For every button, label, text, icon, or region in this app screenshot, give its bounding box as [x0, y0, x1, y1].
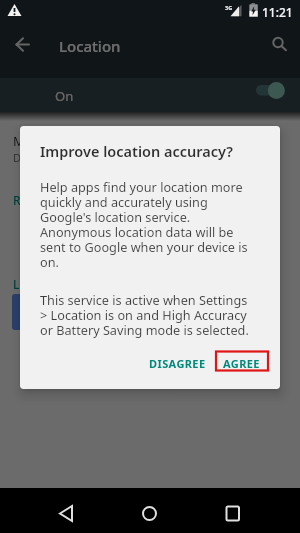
button[interactable] — [141, 505, 158, 522]
button[interactable] — [225, 505, 241, 521]
staticText: AGREE — [223, 356, 260, 371]
staticText: Help apps find your location more quickl… — [40, 178, 248, 271]
staticText: 11:21 — [262, 4, 293, 20]
staticText: This service is active when Settings > L… — [40, 291, 249, 339]
staticText: 3G — [225, 4, 233, 11]
staticText: DISAGREE — [149, 356, 206, 371]
staticText: Device only — [13, 150, 72, 165]
staticText: Improve location accuracy? — [40, 141, 233, 161]
staticText: On — [55, 87, 74, 105]
button[interactable] — [268, 34, 290, 54]
button[interactable]: DISAGREE — [145, 348, 207, 374]
staticText: Location — [59, 36, 121, 56]
button[interactable] — [10, 36, 34, 54]
button[interactable] — [254, 80, 288, 101]
staticText: Location services — [13, 276, 112, 292]
button[interactable] — [56, 505, 74, 522]
staticText: Recent location requests — [13, 192, 155, 208]
staticText: Mode — [13, 132, 48, 150]
button[interactable]: AGREE — [217, 348, 267, 374]
